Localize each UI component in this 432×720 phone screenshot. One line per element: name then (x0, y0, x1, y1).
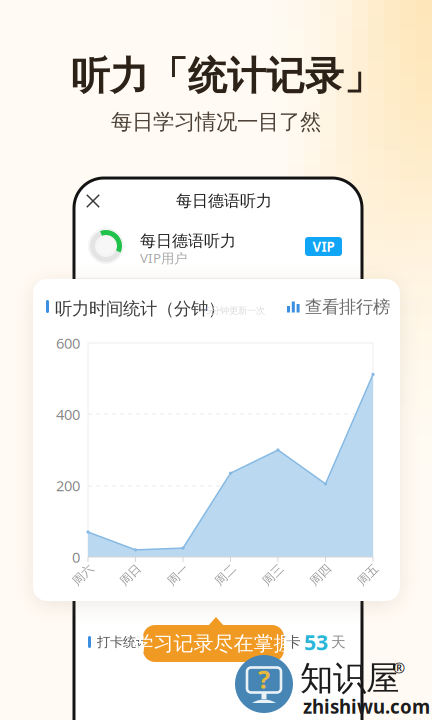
staticText: 学习记录尽在掌握 (133, 631, 293, 656)
staticText: 每日德语听力 (176, 191, 272, 211)
staticText: zhishiwu.com (303, 694, 430, 719)
staticText: ? (258, 662, 270, 696)
staticText: 打卡 (271, 633, 301, 651)
staticText: 周六 (71, 568, 95, 582)
staticText: 400 (56, 405, 80, 424)
staticText: ® (393, 658, 405, 677)
staticText: 0 (72, 547, 80, 567)
staticText: VIP用户 (140, 249, 187, 267)
staticText: 53 (304, 628, 328, 656)
staticText: 周三 (261, 568, 285, 582)
staticText: 打卡统计 (97, 634, 149, 650)
staticText: 600 (56, 333, 80, 353)
staticText: 每日德语听力 (140, 231, 236, 251)
staticText: 知识屋 (300, 658, 399, 699)
staticText: 查看排行榜 (305, 296, 390, 318)
staticText: 周二 (213, 568, 237, 582)
button[interactable]: VIP (305, 237, 342, 256)
staticText: 听力「统计记录」 (71, 52, 383, 100)
staticText: 周五 (356, 568, 380, 582)
staticText: 每日学习情况一目了然 (111, 109, 321, 135)
staticText: 5分钟更新一次 (206, 304, 265, 316)
button[interactable]: 查看排行榜 (287, 297, 382, 317)
button[interactable]: 关闭 (79, 187, 106, 214)
staticText: 200 (56, 476, 80, 495)
staticText: 周日 (118, 568, 142, 582)
staticText: 周四 (308, 568, 332, 582)
staticText: 天 (331, 633, 346, 651)
staticText: 听力时间统计（分钟） (55, 298, 225, 319)
staticText: 周一 (166, 568, 190, 582)
staticText: VIP (312, 238, 334, 255)
